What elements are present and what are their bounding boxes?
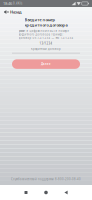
staticText: Назад [10,9,22,15]
button[interactable]: Recent apps [16,185,36,200]
staticText: указан в цифрах после «№» в номере креди… [18,29,73,40]
staticText: 18:46 [3,1,12,6]
button[interactable]: Далее [12,59,80,69]
staticText: Служба клиентской поддержки 8-800-200-08… [11,177,81,181]
staticText: 13/1234 [39,42,52,45]
button[interactable]: Home [36,185,56,200]
staticText: Кредитный договор [31,47,61,51]
staticText: 0.4K/s [12,2,22,5]
button[interactable]: Back [56,185,76,200]
staticText: Введите номер кредитного договора [24,17,67,28]
staticText: Далее [41,62,51,66]
button[interactable]: Назад [0,7,92,17]
